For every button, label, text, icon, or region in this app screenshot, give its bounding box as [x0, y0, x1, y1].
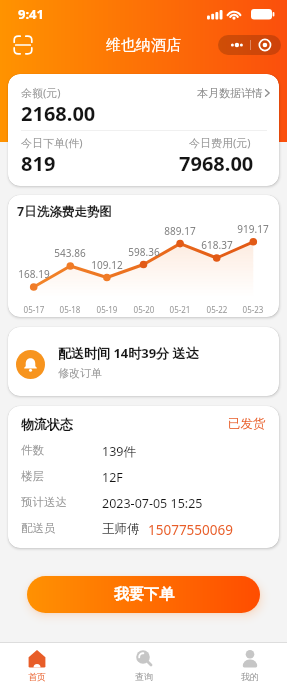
staticText: 543.86 [48, 246, 92, 260]
staticText: 05-18 [48, 304, 92, 315]
staticText: 已发货 [228, 416, 266, 432]
staticText: 919.17 [231, 222, 275, 236]
staticText: 我的 [241, 671, 259, 682]
button[interactable]: 15077550069 [148, 521, 233, 539]
staticText: 05-17 [12, 304, 56, 315]
staticText: 819 [21, 150, 56, 177]
staticText: 楼层 [21, 469, 44, 483]
button[interactable]: 余额(元) [8, 74, 279, 186]
staticText: 修改订单 [58, 366, 102, 380]
staticText: 查询 [135, 671, 153, 682]
staticText: 王师傅 [102, 521, 140, 537]
staticText: 9:41 [18, 5, 44, 23]
staticText: 139件 [102, 443, 136, 460]
button[interactable]: 我要下单 [27, 576, 260, 613]
staticText: 598.36 [122, 245, 166, 259]
button[interactable]: 首页 [4, 643, 70, 693]
staticText: 05-22 [195, 304, 239, 315]
staticText: 12F [102, 469, 123, 486]
staticText: 物流状态 [21, 416, 73, 432]
staticText: 889.17 [158, 224, 202, 238]
staticText: 我要下单 [114, 585, 174, 604]
button[interactable] [13, 35, 33, 55]
staticText: 2023-07-05 15:25 [102, 495, 203, 512]
staticText: 05-19 [85, 304, 129, 315]
staticText: 05-20 [122, 304, 166, 315]
staticText: 109.12 [85, 258, 129, 272]
staticText: 预计送达 [21, 495, 67, 509]
button[interactable]: 查询 [111, 643, 177, 693]
staticText: 配送时间 14时39分 送达 [58, 344, 199, 362]
button[interactable] [218, 35, 281, 55]
staticText: 余额(元) [21, 85, 61, 100]
staticText: 今日费用(元) [189, 135, 251, 150]
staticText: 05-23 [231, 304, 275, 315]
button[interactable]: 我的 [217, 643, 283, 693]
staticText: 7日洗涤费走势图 [17, 203, 112, 220]
staticText: 维也纳酒店 [106, 36, 181, 55]
staticText: 本月数据详情 [197, 86, 263, 100]
button[interactable]: 7日洗涤费走势图 [8, 195, 279, 317]
staticText: 2168.00 [21, 100, 96, 127]
staticText: 05-21 [158, 304, 202, 315]
button[interactable]: 配送时间 14时39分 送达 [8, 327, 279, 396]
staticText: 7968.00 [179, 150, 254, 177]
button[interactable]: 本月数据详情 [197, 86, 272, 100]
staticText: 件数 [21, 443, 44, 457]
staticText: 168.19 [12, 267, 56, 281]
staticText: 首页 [28, 671, 46, 682]
staticText: 618.37 [195, 238, 239, 252]
staticText: 配送员 [21, 521, 56, 535]
staticText: 今日下单(件) [21, 135, 83, 150]
